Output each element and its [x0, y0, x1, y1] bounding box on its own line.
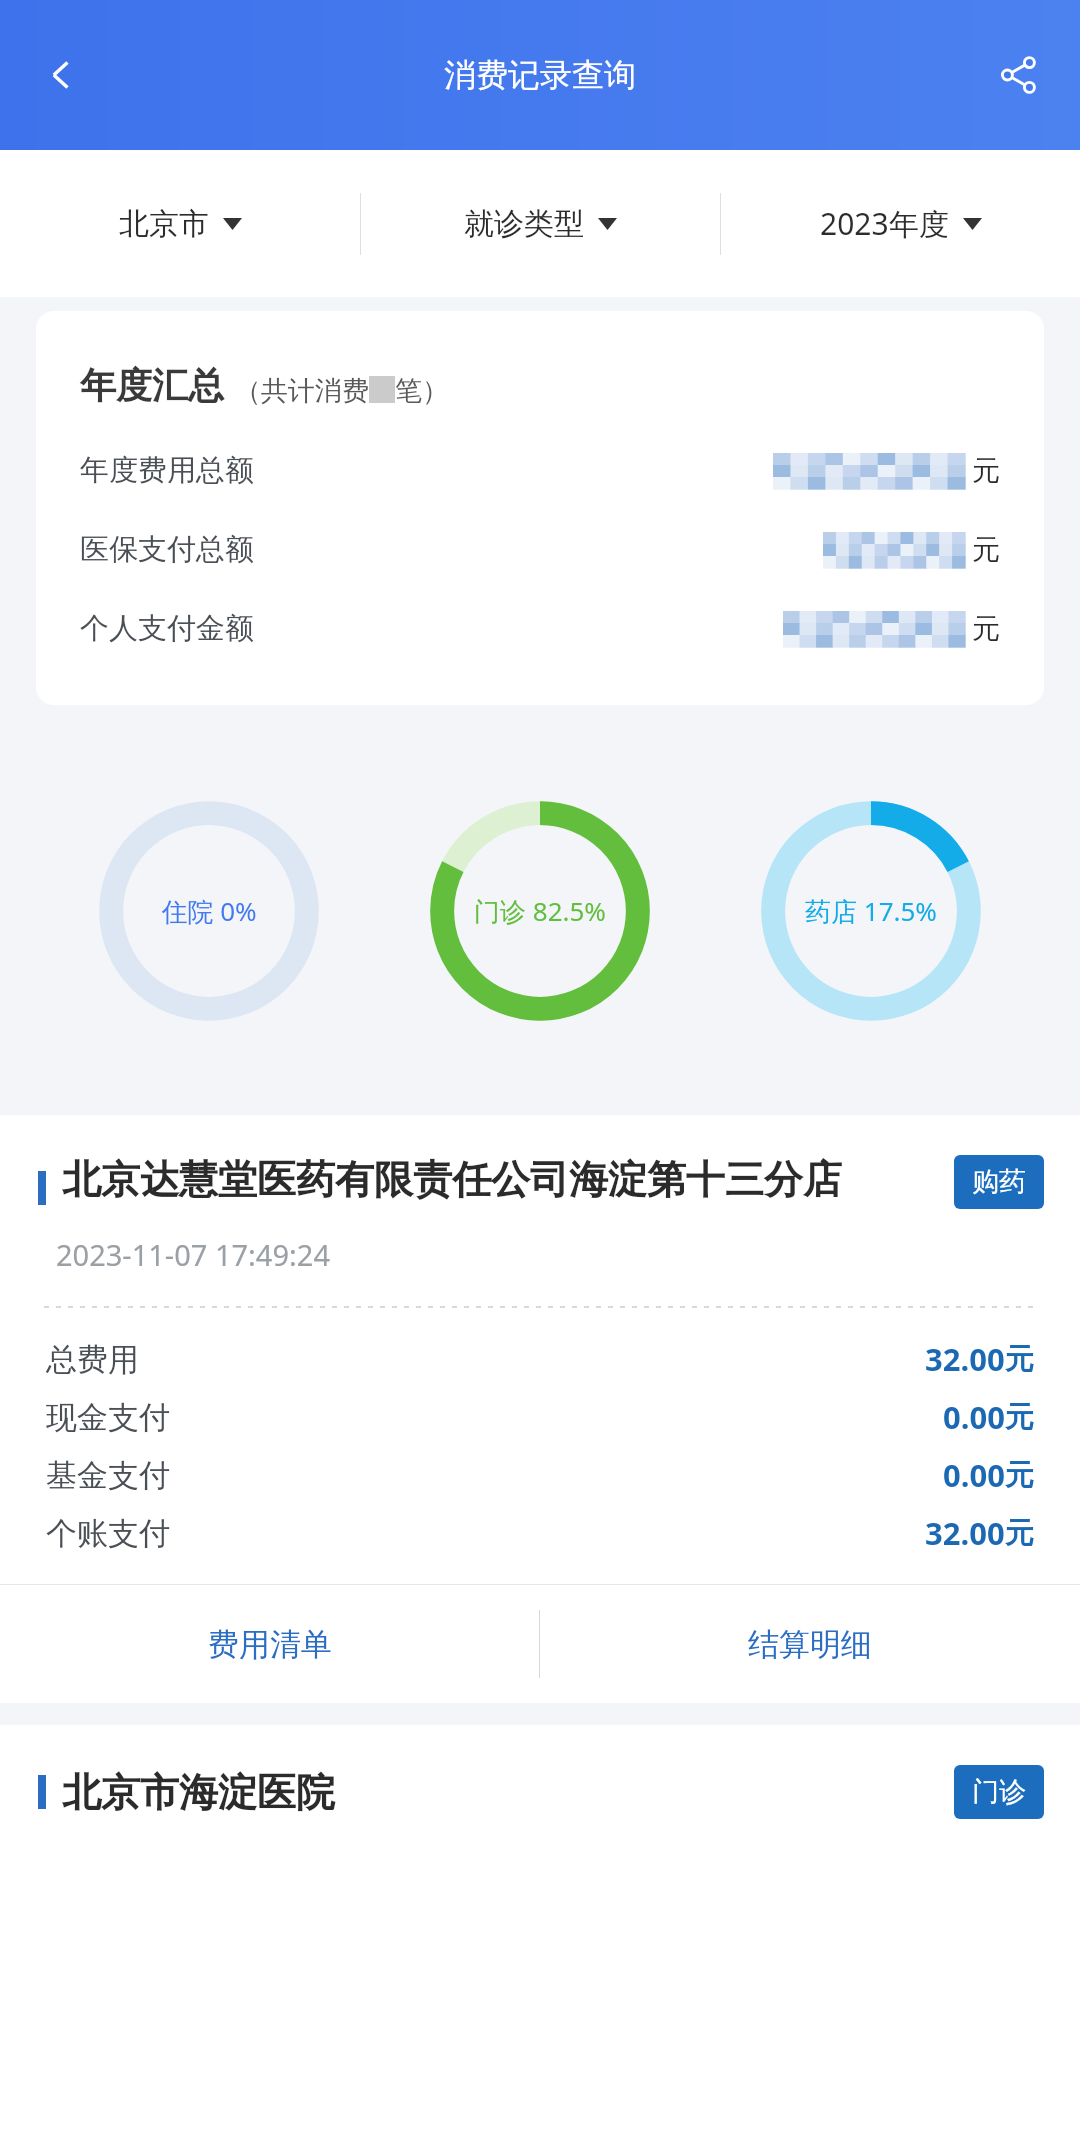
staticText: 32.00 — [925, 1338, 1005, 1380]
button[interactable]: 北京市 — [0, 150, 360, 297]
staticText: 消费记录查询 — [444, 55, 636, 95]
button[interactable]: 结算明细 — [540, 1585, 1080, 1703]
staticText: 元 — [1005, 1341, 1034, 1378]
button[interactable]: 基金支付 — [46, 1454, 1034, 1496]
staticText: 门诊 — [972, 1775, 1026, 1809]
staticText: 0.00 — [943, 1396, 1005, 1438]
staticText: 总费用 — [46, 1340, 139, 1379]
staticText: 年度汇总 — [80, 363, 224, 408]
staticText: 就诊类型 — [464, 205, 584, 243]
staticText: 年度费用总额 — [80, 452, 254, 489]
staticText: 北京市 — [119, 205, 209, 243]
staticText: 医保支付总额 — [80, 531, 254, 568]
button[interactable]: 2023年度 — [721, 150, 1080, 297]
staticText: 元 — [1005, 1399, 1034, 1436]
button[interactable]: 就诊类型 — [361, 150, 720, 297]
button[interactable]: 住院 0% — [87, 789, 331, 1033]
staticText: 笔） — [395, 374, 449, 408]
staticText: 北京市海淀医院 — [62, 1768, 335, 1817]
staticText: 元 — [972, 532, 1000, 567]
button[interactable]: 药店 17.5% — [749, 789, 993, 1033]
staticText: 元 — [1005, 1515, 1034, 1552]
staticText: 元 — [1005, 1457, 1034, 1494]
button[interactable]: 购药 — [954, 1155, 1044, 1209]
button[interactable]: 个账支付 — [46, 1512, 1034, 1554]
button[interactable]: 总费用 — [46, 1338, 1034, 1380]
staticText: 现金支付 — [46, 1398, 170, 1437]
staticText: 32.00 — [925, 1512, 1005, 1554]
staticText: 北京达慧堂医药有限责任公司海淀第十三分店 — [62, 1155, 842, 1204]
staticText: 个人支付金额 — [80, 610, 254, 647]
staticText: 结算明细 — [748, 1625, 872, 1664]
staticText: 元 — [972, 453, 1000, 488]
staticText: 2023年度 — [820, 203, 949, 244]
button[interactable]: 费用清单 — [0, 1585, 539, 1703]
staticText: 个账支付 — [46, 1514, 170, 1553]
staticText: 2023-11-07 17:49:24 — [56, 1235, 330, 1274]
button[interactable]: 现金支付 — [46, 1396, 1034, 1438]
staticText: （共计消费 — [234, 374, 369, 408]
button[interactable]: 个人支付金额 — [80, 610, 1000, 647]
staticText: 住院 0% — [161, 893, 257, 929]
button[interactable]: 年度费用总额 — [80, 452, 1000, 489]
staticText: 购药 — [972, 1165, 1026, 1199]
staticText: 费用清单 — [208, 1625, 332, 1664]
staticText: 门诊 82.5% — [474, 893, 606, 929]
staticText: 基金支付 — [46, 1456, 170, 1495]
staticText: 药店 17.5% — [805, 893, 937, 929]
button[interactable]: 医保支付总额 — [80, 531, 1000, 568]
staticText: 0.00 — [943, 1454, 1005, 1496]
button[interactable]: Share — [984, 40, 1054, 110]
button[interactable]: 门诊 82.5% — [418, 789, 662, 1033]
button[interactable]: 门诊 — [954, 1765, 1044, 1819]
button[interactable]: Back — [26, 40, 96, 110]
staticText: 元 — [972, 611, 1000, 646]
